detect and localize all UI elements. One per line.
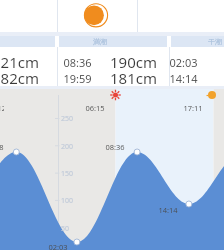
button[interactable] — [171, 36, 224, 47]
staticText: 181cm — [110, 68, 157, 88]
staticText: 06:15 — [85, 103, 105, 113]
staticText: 190cm — [110, 52, 157, 72]
staticText: 19:59 — [63, 71, 92, 86]
staticText: 200 — [61, 142, 74, 152]
staticText: 50 — [61, 224, 70, 234]
staticText: 14:14 — [169, 71, 198, 86]
button[interactable] — [170, 47, 224, 86]
button[interactable]: Tide curve chart — [0, 89, 224, 250]
button[interactable] — [59, 36, 167, 47]
staticText: 250 — [61, 114, 74, 124]
staticText: 19:28 — [0, 142, 4, 152]
staticText: 100 — [61, 196, 74, 206]
button[interactable] — [0, 47, 57, 86]
staticText: 08:36 — [105, 142, 125, 152]
staticText: 干潮 — [208, 37, 222, 46]
staticText: 14:14 — [158, 205, 178, 215]
staticText: 21cm — [0, 52, 39, 72]
staticText: 満潮 — [93, 37, 107, 46]
staticText: 82cm — [0, 68, 39, 88]
staticText: 150 — [61, 169, 74, 179]
button[interactable] — [58, 47, 169, 86]
button[interactable]: Moon phase — [57, 0, 137, 32]
staticText: 02:03 — [48, 242, 68, 250]
staticText: 17:11 — [183, 103, 203, 113]
staticText: 17:12 — [0, 103, 4, 113]
staticText: 08:36 — [63, 55, 92, 70]
staticText: 02:03 — [169, 55, 198, 70]
